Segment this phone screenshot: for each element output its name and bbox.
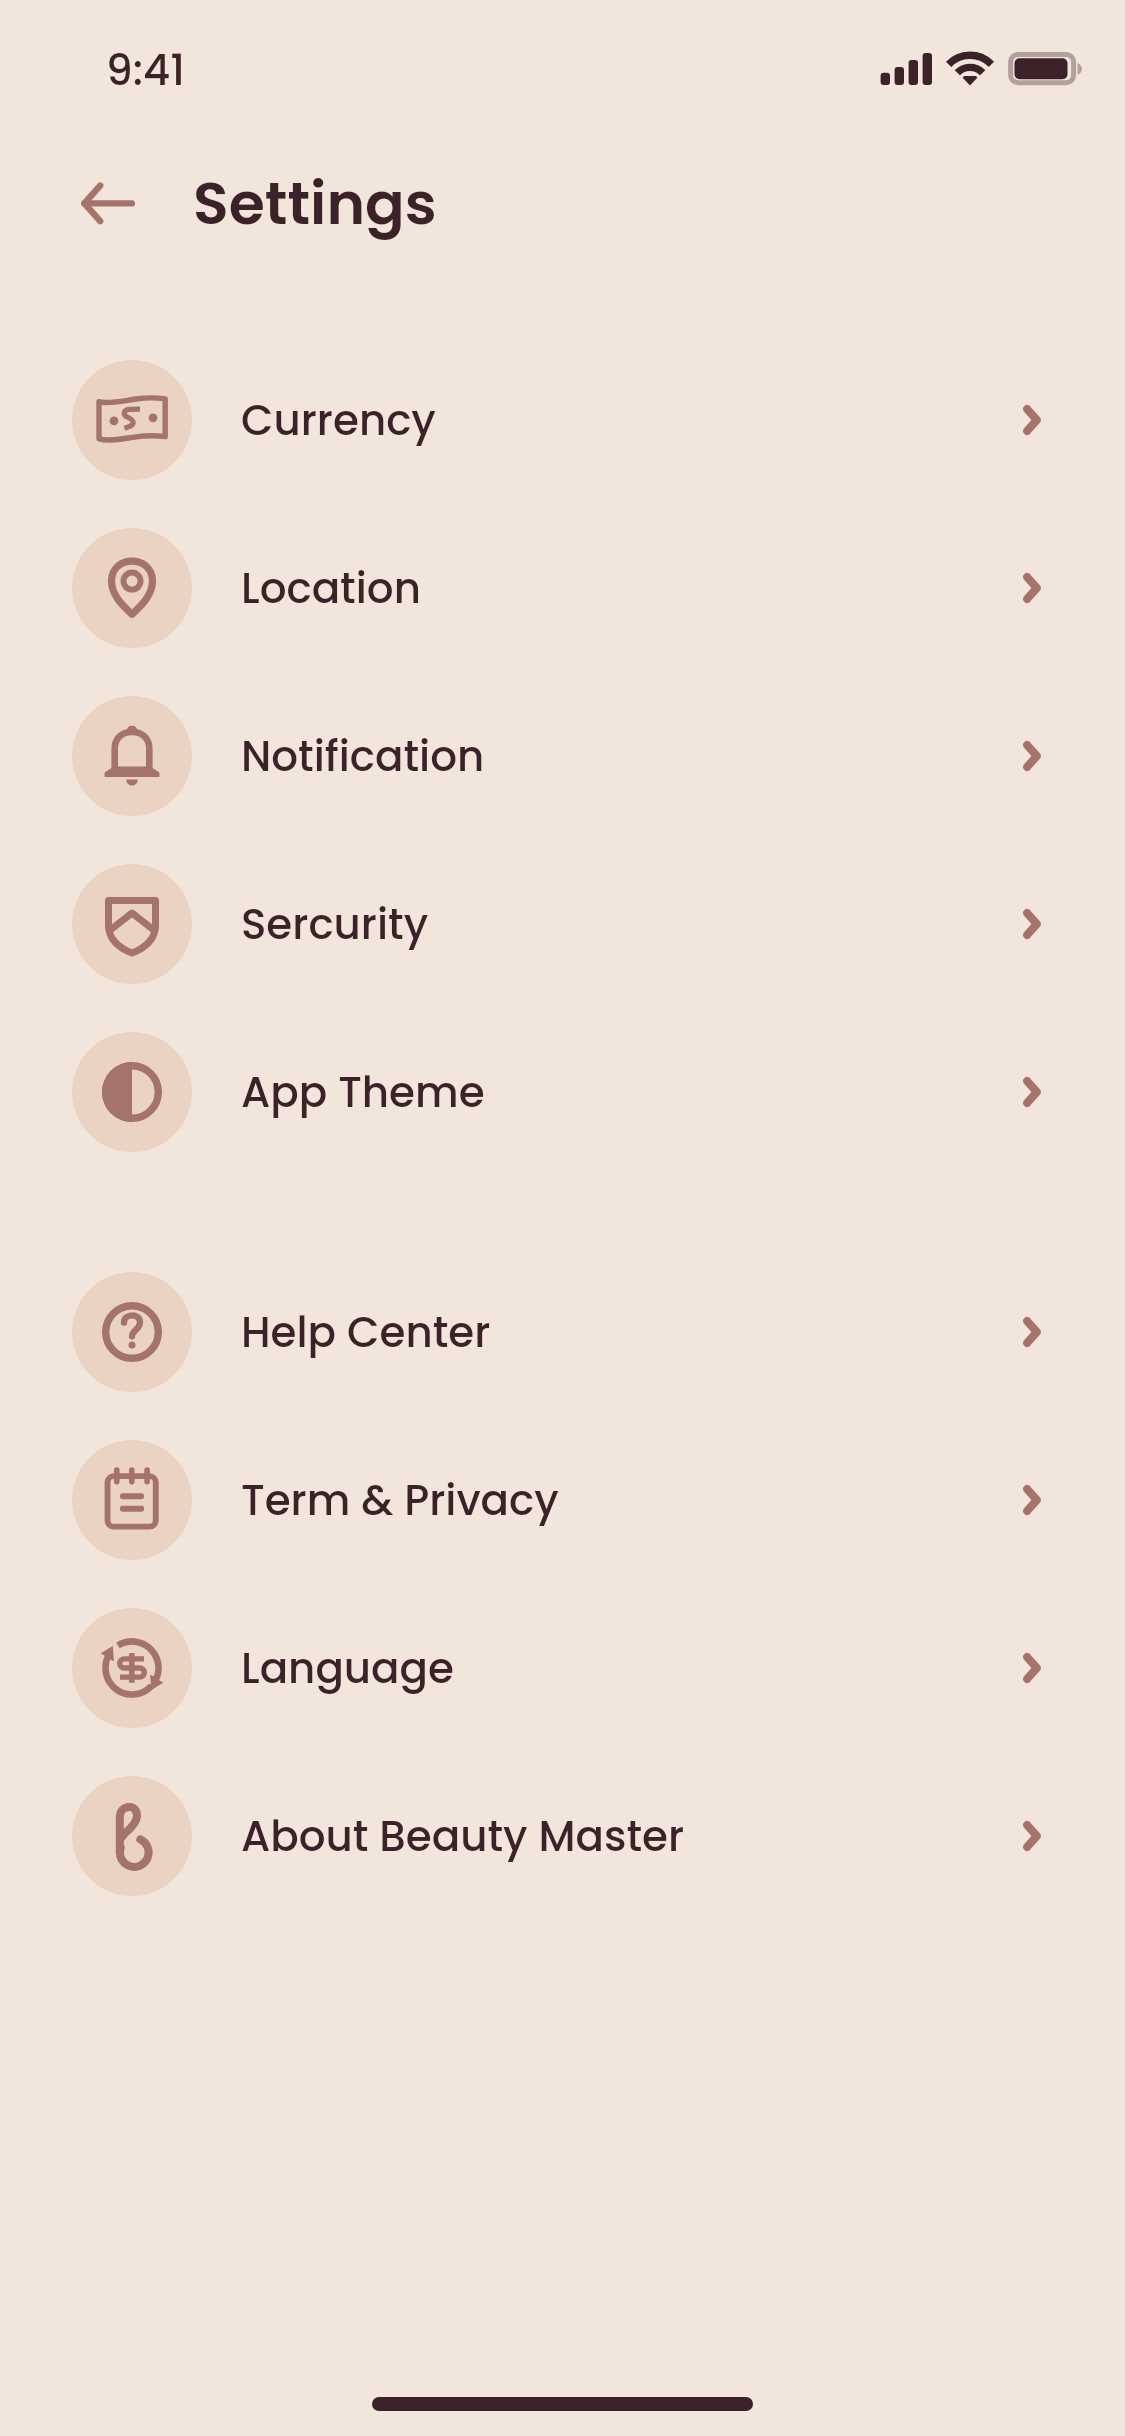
- button[interactable]: Location: [0, 504, 1125, 672]
- staticText: Term & Privacy: [241, 1471, 559, 1530]
- button[interactable]: Help Center: [0, 1248, 1125, 1416]
- button[interactable]: Back: [72, 167, 144, 239]
- staticText: About Beauty Master: [241, 1807, 685, 1866]
- button[interactable]: Notification: [0, 672, 1125, 840]
- button[interactable]: Language: [0, 1584, 1125, 1752]
- staticText: Help Center: [241, 1303, 491, 1362]
- staticText: Settings: [193, 163, 437, 245]
- staticText: Location: [241, 559, 421, 618]
- staticText: App Theme: [241, 1063, 485, 1122]
- staticText: Language: [241, 1639, 454, 1698]
- staticText: Notification: [241, 727, 485, 786]
- staticText: Currency: [241, 391, 436, 450]
- button[interactable]: About Beauty Master: [0, 1752, 1125, 1920]
- staticText: Sercurity: [241, 895, 429, 954]
- button[interactable]: Currency: [0, 336, 1125, 504]
- button[interactable]: Sercurity: [0, 840, 1125, 1008]
- staticText: 9:41: [106, 41, 185, 100]
- button[interactable]: App Theme: [0, 1008, 1125, 1176]
- button[interactable]: Term & Privacy: [0, 1416, 1125, 1584]
